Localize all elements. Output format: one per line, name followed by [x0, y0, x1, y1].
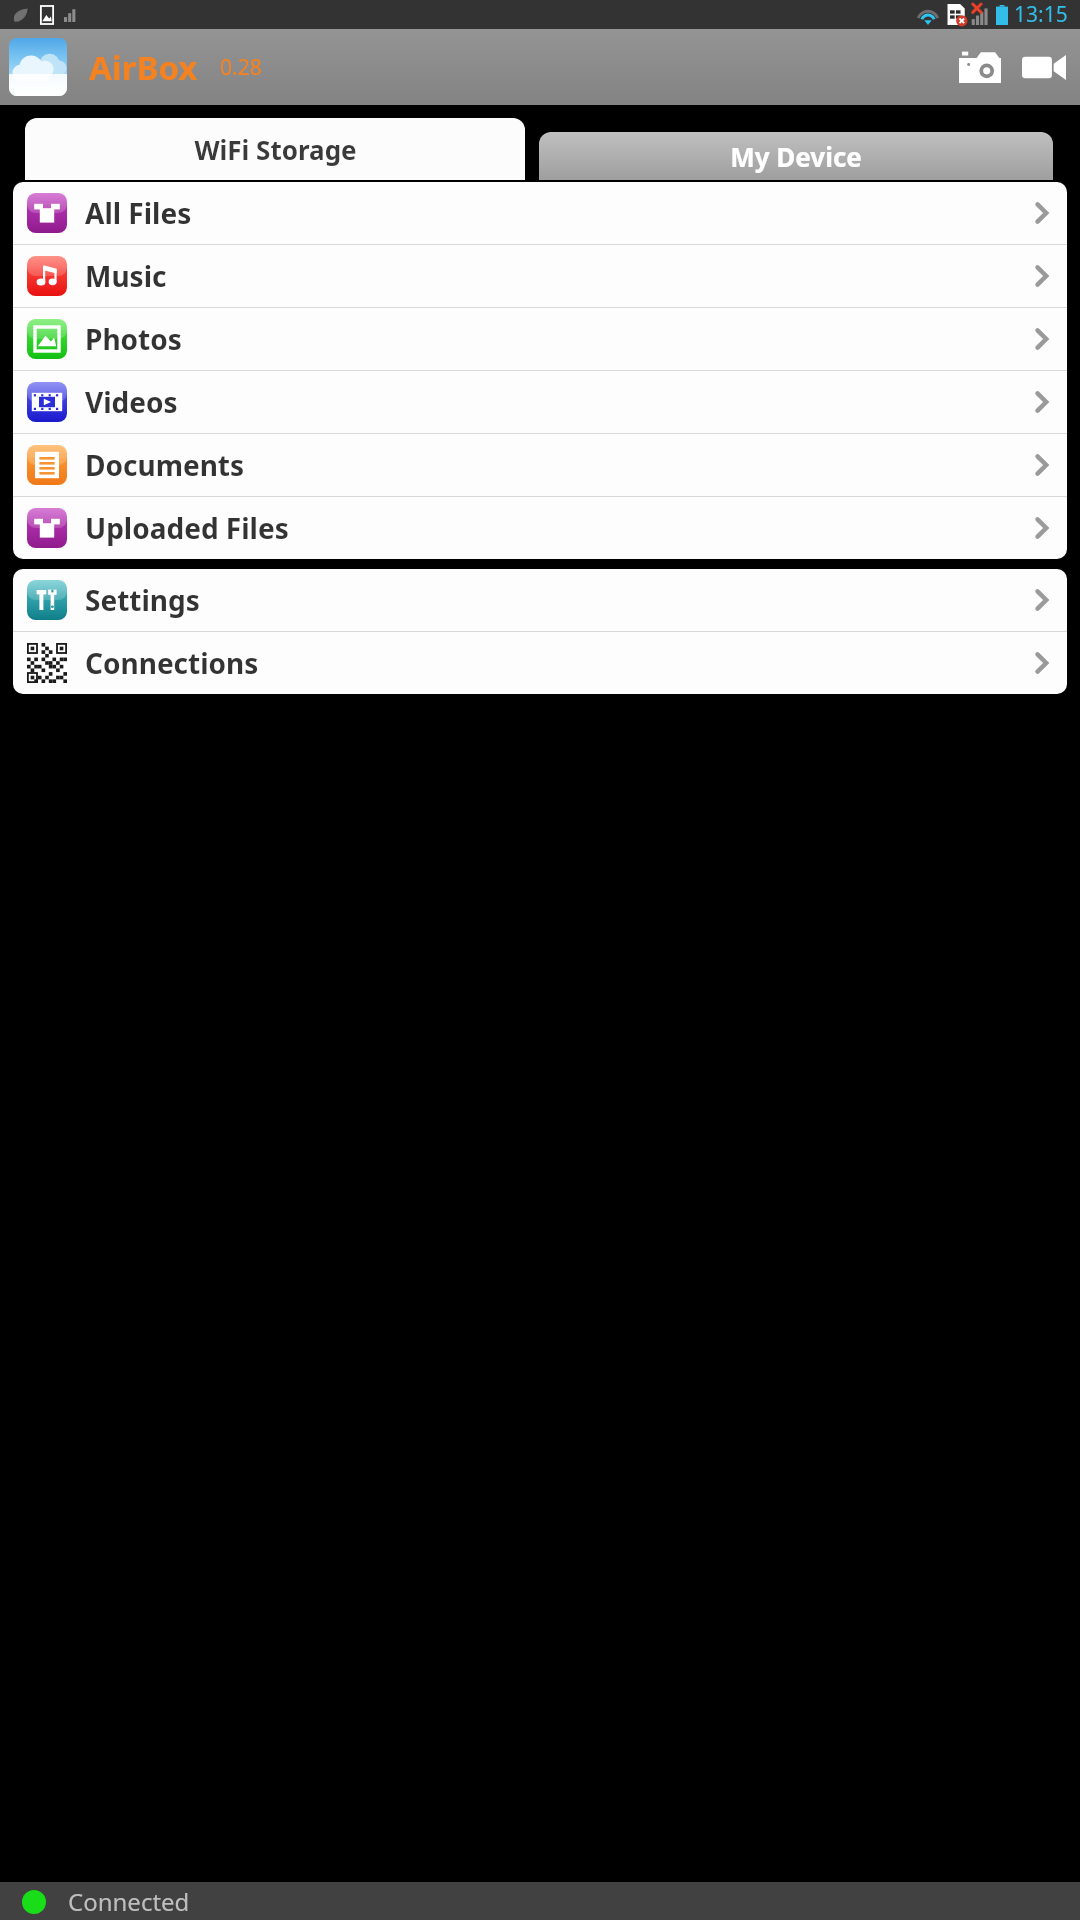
staticText: 0.28: [220, 53, 262, 82]
staticText: Uploaded Files: [85, 509, 289, 547]
button[interactable]: Connections: [13, 632, 1067, 694]
staticText: 13:15: [1014, 0, 1068, 29]
button[interactable]: Take photo: [953, 40, 1007, 94]
button[interactable]: Photos: [13, 308, 1067, 370]
button[interactable]: WiFi Storage: [25, 118, 525, 180]
staticText: Documents: [85, 446, 245, 484]
staticText: Photos: [85, 320, 182, 358]
staticText: AirBox: [89, 45, 198, 90]
button[interactable]: Music: [13, 245, 1067, 307]
button[interactable]: Documents: [13, 434, 1067, 496]
staticText: Videos: [85, 383, 178, 421]
button[interactable]: AirBox logo: [9, 38, 67, 96]
staticText: My Device: [730, 139, 862, 174]
button[interactable]: Record video: [1017, 40, 1071, 94]
staticText: WiFi Storage: [194, 132, 357, 167]
staticText: Connections: [85, 644, 259, 682]
staticText: Music: [85, 257, 167, 295]
button[interactable]: Uploaded Files: [13, 497, 1067, 559]
staticText: Connected: [68, 1885, 190, 1918]
button[interactable]: All Files: [13, 182, 1067, 244]
button[interactable]: Videos: [13, 371, 1067, 433]
button[interactable]: My Device: [539, 132, 1053, 180]
staticText: Settings: [85, 581, 200, 619]
staticText: All Files: [85, 194, 192, 232]
button[interactable]: Settings: [13, 569, 1067, 631]
